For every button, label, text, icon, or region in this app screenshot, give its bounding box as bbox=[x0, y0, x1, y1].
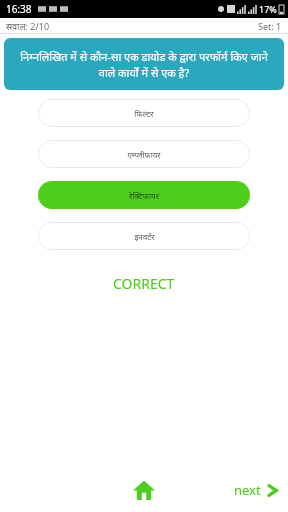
button[interactable]: इनवर्टर bbox=[38, 222, 250, 250]
staticText: एम्प्लीफायर bbox=[127, 149, 161, 160]
button[interactable]: फिल्टर bbox=[38, 99, 250, 127]
staticText: सवाल: 2/10 bbox=[6, 20, 50, 32]
button[interactable]: Home bbox=[124, 470, 164, 510]
staticText: 17% bbox=[259, 3, 277, 15]
staticText: रेक्टिफायर bbox=[129, 190, 159, 201]
button[interactable]: रेक्टिफायर bbox=[38, 181, 250, 209]
staticText: फिल्टर bbox=[134, 108, 154, 119]
staticText: निम्नलिखित में से कौन-सा एक डायोड के द्व… bbox=[18, 49, 270, 80]
button[interactable]: next bbox=[234, 481, 278, 499]
button[interactable]: एम्प्लीफायर bbox=[38, 140, 250, 168]
staticText: next bbox=[234, 481, 261, 499]
staticText: इनवर्टर bbox=[134, 231, 155, 242]
staticText: Set: 1 bbox=[258, 20, 282, 32]
staticText: 16:38 bbox=[6, 2, 32, 16]
staticText: CORRECT bbox=[113, 274, 175, 293]
